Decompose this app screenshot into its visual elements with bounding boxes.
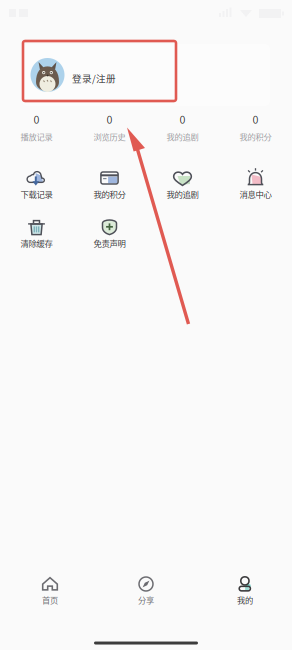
- staticText: 清除缓存: [20, 237, 52, 249]
- button[interactable]: 我的: [200, 576, 290, 610]
- staticText: 我的积分: [93, 188, 125, 200]
- staticText: 下载记录: [20, 188, 52, 200]
- staticText: 播放记录: [20, 131, 52, 143]
- button[interactable]: 首页: [5, 576, 95, 610]
- staticText: 免责声明: [93, 237, 125, 249]
- staticText: 0: [33, 111, 39, 127]
- button[interactable]: 0: [73, 108, 146, 146]
- staticText: 我的追剧: [166, 188, 198, 200]
- button[interactable]: 我的积分: [73, 165, 146, 211]
- button[interactable]: 下载记录: [0, 165, 73, 211]
- staticText: 0: [106, 111, 112, 127]
- staticText: 消息中心: [239, 188, 271, 200]
- button[interactable]: 清除缓存: [0, 214, 73, 260]
- staticText: 我的积分: [239, 131, 271, 143]
- staticText: 登录/注册: [72, 71, 116, 85]
- button[interactable]: 0: [0, 108, 73, 146]
- button[interactable]: 0: [219, 108, 292, 146]
- button[interactable]: 0: [146, 108, 219, 146]
- button[interactable]: 登录/注册: [22, 44, 270, 106]
- staticText: 0: [252, 111, 258, 127]
- staticText: 首页: [42, 594, 58, 606]
- button[interactable]: 我的追剧: [146, 165, 219, 211]
- button[interactable]: 消息中心: [219, 165, 292, 211]
- staticText: 我的追剧: [166, 131, 198, 143]
- staticText: 我的: [237, 594, 253, 606]
- staticText: 浏览历史: [93, 131, 125, 143]
- button[interactable]: 分享: [101, 576, 191, 610]
- staticText: 分享: [138, 594, 154, 606]
- button[interactable]: 免责声明: [73, 214, 146, 260]
- staticText: 0: [179, 111, 185, 127]
